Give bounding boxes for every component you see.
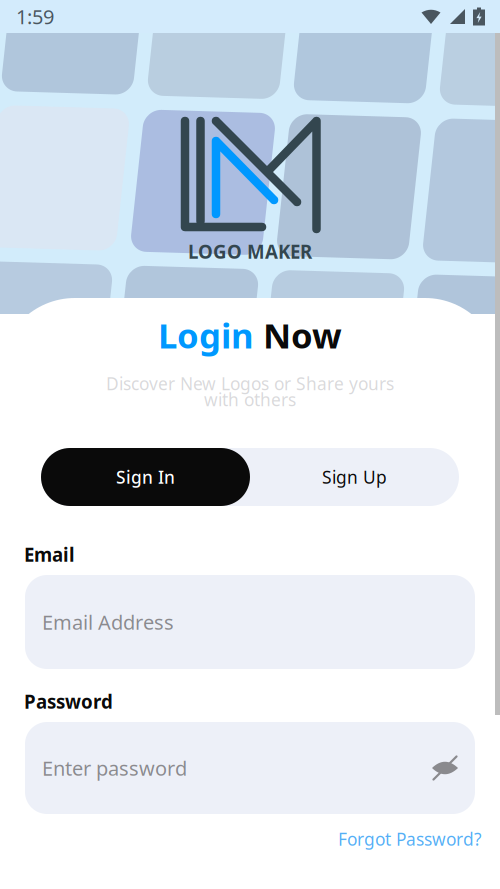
staticText: Enter password (42, 755, 187, 781)
staticText: Login (158, 312, 263, 358)
staticText: Forgot Password? (338, 827, 482, 850)
button[interactable]: Sign In (41, 448, 250, 506)
staticText: Sign Up (322, 465, 387, 488)
button[interactable]: Sign Up (250, 448, 459, 506)
staticText: Email Address (42, 609, 174, 635)
staticText: Discover New Logos or Share yours (106, 372, 394, 395)
staticText: LOGO MAKER (188, 239, 312, 264)
staticText: Now (263, 312, 342, 358)
staticText: Sign In (116, 465, 175, 488)
staticText: Password (24, 689, 113, 714)
staticText: Email (24, 542, 75, 567)
staticText: with others (204, 388, 296, 411)
button[interactable]: Show password (430, 754, 460, 782)
staticText: 1:59 (16, 3, 54, 30)
button[interactable]: Forgot Password? (322, 826, 482, 852)
